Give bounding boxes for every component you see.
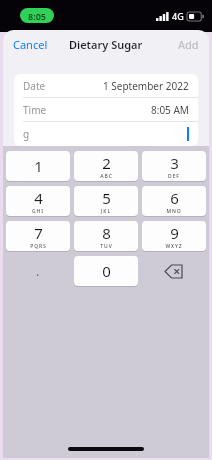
staticText: . <box>36 262 40 280</box>
staticText: GHI <box>32 208 44 215</box>
button[interactable]: Add <box>168 32 209 57</box>
staticText: 6 <box>170 188 179 208</box>
button[interactable]: g <box>14 122 198 146</box>
staticText: 2 <box>102 153 111 173</box>
staticText: Date <box>23 79 46 93</box>
staticText: 7 <box>34 223 43 243</box>
staticText: ABC <box>100 173 113 180</box>
staticText: 4 <box>34 188 43 208</box>
staticText: 9 <box>170 223 179 243</box>
button[interactable]: Backspace <box>142 256 206 286</box>
button[interactable]: 4 <box>6 186 70 216</box>
button[interactable]: 8 <box>74 221 138 251</box>
button[interactable]: 6 <box>142 186 206 216</box>
button[interactable]: 0 <box>74 256 138 286</box>
staticText: 8 <box>102 223 111 243</box>
button[interactable]: 7 <box>6 221 70 251</box>
staticText: Dietary Sugar <box>69 37 143 52</box>
staticText: TUV <box>100 243 113 250</box>
staticText: 4G <box>172 10 184 22</box>
staticText: MNO <box>166 208 182 215</box>
button[interactable]: 2 <box>74 151 138 181</box>
button[interactable]: 5 <box>74 186 138 216</box>
staticText: 1 <box>34 156 43 176</box>
staticText: DEF <box>168 173 180 180</box>
staticText: 3 <box>170 153 179 173</box>
button[interactable]: Date <box>14 74 198 97</box>
button[interactable]: Time <box>14 98 198 121</box>
button[interactable]: Cancel <box>3 32 58 57</box>
staticText: Time <box>23 103 47 117</box>
staticText: 1 September 2022 <box>103 79 189 93</box>
button[interactable]: 1 <box>6 151 70 181</box>
staticText: Cancel <box>13 37 48 52</box>
staticText: 5 <box>102 188 111 208</box>
staticText: JKL <box>101 208 111 215</box>
staticText: 8:05 AM <box>151 103 189 117</box>
staticText: 8:05 <box>28 10 46 22</box>
staticText: 0 <box>102 261 111 281</box>
button[interactable]: 9 <box>142 221 206 251</box>
staticText: Add <box>178 37 199 52</box>
staticText: g <box>23 127 30 141</box>
staticText: WXYZ <box>165 243 183 250</box>
button[interactable]: 3 <box>142 151 206 181</box>
staticText: PQRS <box>30 243 47 250</box>
